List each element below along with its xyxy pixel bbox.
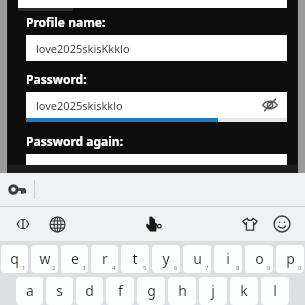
- staticText: Age: 24: [8, 46, 43, 60]
- staticText: k: [240, 281, 248, 300]
- staticText: o: [255, 249, 264, 268]
- staticText: Country:: [8, 66, 49, 80]
- staticText: t: [132, 249, 138, 268]
- staticText: 6: [174, 264, 178, 272]
- button[interactable]: Password suggestion: [0, 173, 34, 206]
- button[interactable]: h: [168, 277, 196, 305]
- staticText: 5: [143, 264, 147, 272]
- button[interactable]: j: [199, 277, 227, 305]
- staticText: Last seen:: [8, 146, 55, 160]
- button[interactable]: f: [106, 277, 134, 305]
- button[interactable]: r: [91, 245, 118, 273]
- staticText: Password:: [26, 71, 87, 87]
- button[interactable]: love2025skiskklo: [26, 92, 287, 118]
- staticText: love2025skisKkklo: [36, 41, 130, 56]
- staticText: y: [162, 249, 170, 268]
- button[interactable]: u: [183, 245, 211, 273]
- button[interactable]: d: [76, 277, 103, 305]
- button[interactable]: i: [214, 245, 242, 273]
- staticText: f: [118, 281, 123, 300]
- staticText: l: [273, 281, 277, 300]
- staticText: Signed up:: [8, 126, 58, 140]
- button[interactable]: g: [137, 277, 165, 305]
- staticText: p: [286, 249, 295, 268]
- button[interactable]: y: [152, 245, 180, 273]
- staticText: i: [226, 249, 230, 268]
- staticText: 4: [112, 264, 116, 272]
- staticText: u: [193, 249, 202, 268]
- staticText: a: [26, 281, 34, 300]
- staticText: 2: [52, 264, 56, 272]
- button[interactable]: o: [245, 245, 273, 273]
- button[interactable]: Change language: [44, 211, 70, 237]
- staticText: 3: [82, 264, 86, 272]
- button[interactable]: Emoji: [269, 211, 295, 237]
- button[interactable]: Cursor control: [10, 211, 36, 237]
- staticText: r: [102, 249, 108, 268]
- button[interactable]: love2025skisKkklo: [26, 35, 287, 61]
- staticText: Gender: Woman: [8, 26, 85, 40]
- button[interactable]: s: [46, 277, 73, 305]
- button[interactable]: e: [61, 245, 88, 273]
- button[interactable]: Hide password: [259, 94, 281, 116]
- staticText: s: [56, 281, 63, 300]
- button[interactable]: q: [1, 245, 28, 273]
- button[interactable]: t: [121, 245, 149, 273]
- staticText: g: [147, 281, 156, 300]
- staticText: 7: [205, 264, 209, 272]
- staticText: e: [71, 249, 79, 268]
- button[interactable]: a: [16, 277, 43, 305]
- staticText: 8: [236, 264, 240, 272]
- staticText: 9: [267, 264, 271, 272]
- button[interactable]: l: [261, 277, 289, 305]
- staticText: Profile name:: [26, 14, 106, 30]
- staticText: j: [211, 281, 215, 300]
- staticText: love2025skiskklo: [36, 98, 123, 113]
- staticText: q: [10, 249, 19, 268]
- staticText: Profile hits: 144: [8, 86, 81, 100]
- staticText: d: [85, 281, 94, 300]
- staticText: 0: [298, 264, 302, 272]
- button[interactable]: w: [31, 245, 58, 273]
- button[interactable]: Gesture typing: [140, 211, 166, 237]
- staticText: h: [178, 281, 187, 300]
- staticText: Subscribers: 18: [8, 106, 80, 120]
- staticText: Report this user: [125, 145, 200, 159]
- staticText: w: [39, 249, 51, 268]
- button[interactable]: Theme: [237, 211, 263, 237]
- staticText: 1: [22, 264, 26, 272]
- button[interactable]: p: [276, 245, 304, 273]
- button[interactable]: k: [230, 277, 258, 305]
- staticText: Password again:: [26, 133, 124, 149]
- staticText: 83.3%: [232, 27, 261, 41]
